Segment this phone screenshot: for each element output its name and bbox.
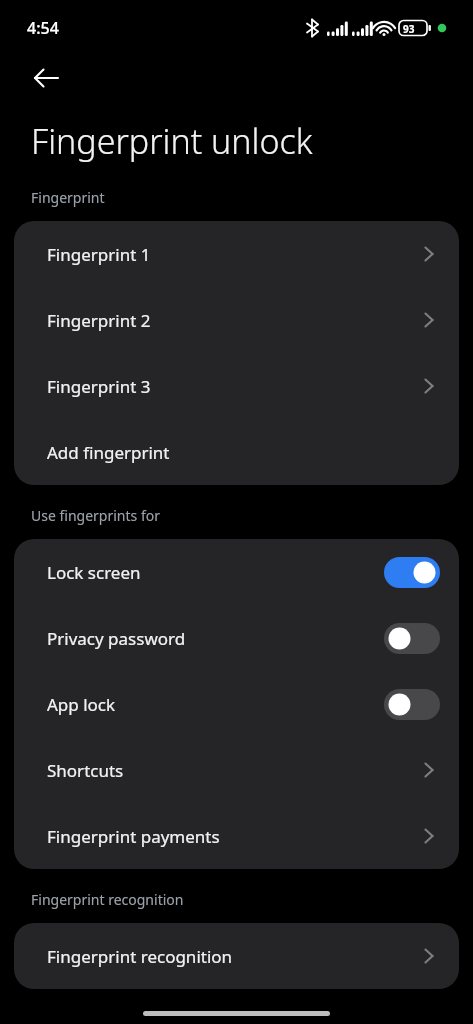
staticText: Fingerprint recognition — [31, 890, 184, 909]
staticText: Use fingerprints for — [31, 506, 160, 525]
staticText: App lock — [47, 693, 384, 716]
button[interactable]: Privacy password — [14, 605, 459, 671]
staticText: 93 — [403, 22, 415, 36]
staticText: Fingerprint 2 — [47, 309, 418, 332]
staticText: Privacy password — [47, 627, 384, 650]
button[interactable]: Fingerprint 1 — [14, 221, 459, 287]
button[interactable]: Fingerprint 3 — [14, 353, 459, 419]
button[interactable]: Fingerprint payments — [14, 803, 459, 869]
staticText: Fingerprint unlock — [31, 118, 313, 164]
button[interactable]: Fingerprint recognition — [14, 923, 459, 989]
button[interactable]: Lock screen — [14, 539, 459, 605]
button[interactable]: Fingerprint 2 — [14, 287, 459, 353]
staticText: Fingerprint 3 — [47, 375, 418, 398]
staticText: Add fingerprint — [47, 441, 440, 464]
staticText: Lock screen — [47, 561, 384, 584]
button[interactable]: App lock — [14, 671, 459, 737]
staticText: Shortcuts — [47, 759, 418, 782]
staticText: Fingerprint payments — [47, 825, 418, 848]
button[interactable]: Shortcuts — [14, 737, 459, 803]
button[interactable]: Add fingerprint — [14, 419, 459, 485]
button[interactable]: Back — [24, 56, 68, 100]
staticText: Fingerprint recognition — [47, 945, 418, 968]
staticText: 4:54 — [27, 17, 59, 39]
staticText: Fingerprint 1 — [47, 243, 418, 266]
staticText: Fingerprint — [31, 188, 105, 207]
